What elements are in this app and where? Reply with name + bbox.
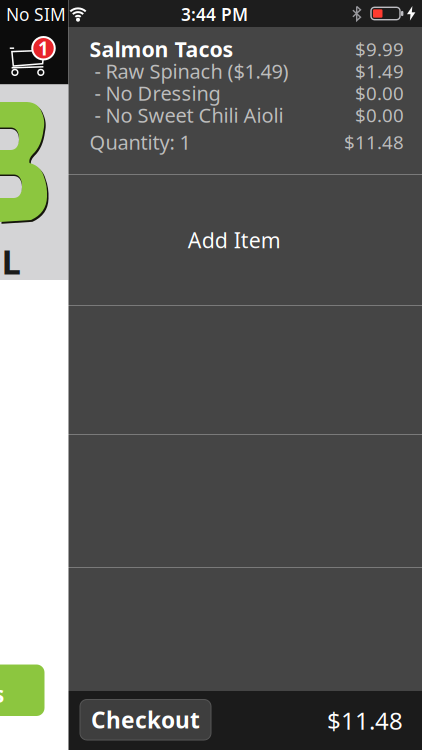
button[interactable]: Add Item: [68, 175, 422, 305]
button[interactable]: Checkout: [80, 699, 211, 740]
staticText: Checkout: [91, 705, 200, 735]
staticText: Salmon Tacos: [89, 35, 233, 63]
staticText: s: [0, 679, 4, 709]
staticText: $11.48: [344, 130, 404, 154]
staticText: $11.48: [327, 705, 403, 736]
staticText: 1: [38, 36, 49, 61]
button[interactable]: Cart: [3, 30, 51, 72]
staticText: L: [1, 238, 20, 284]
staticText: - Raw Spinach ($1.49): [89, 58, 288, 84]
staticText: 3:44 PM: [181, 3, 248, 26]
button[interactable]: Locations: [0, 664, 44, 716]
staticText: $0.00: [355, 103, 404, 127]
staticText: - No Dressing: [89, 80, 220, 106]
staticText: No SIM: [6, 3, 66, 26]
staticText: $9.99: [355, 37, 404, 61]
staticText: - No Sweet Chili Aioli: [89, 102, 283, 128]
staticText: $1.49: [355, 59, 404, 83]
staticText: $0.00: [355, 81, 404, 105]
staticText: Quantity: 1: [89, 129, 190, 155]
staticText: Add Item: [188, 226, 281, 254]
